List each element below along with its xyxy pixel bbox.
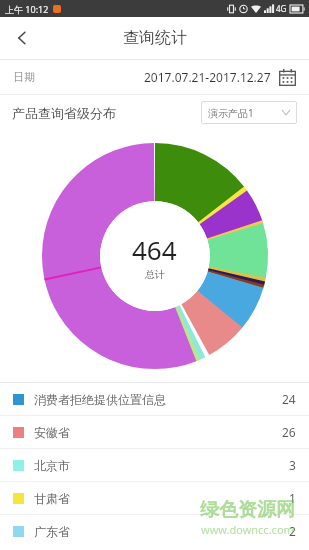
staticText: 3 xyxy=(289,457,296,473)
staticText: 4G xyxy=(276,3,287,14)
staticText: 26 xyxy=(282,424,296,440)
button[interactable]: 甘肃省 xyxy=(0,482,309,514)
staticText: 北京市 xyxy=(34,458,70,473)
button[interactable]: 演示产品1 xyxy=(201,101,297,124)
staticText: 总计 xyxy=(145,268,165,281)
staticText: 绿色资源网 xyxy=(200,498,295,522)
button[interactable]: 日期 xyxy=(0,60,309,94)
button[interactable]: 广东省 xyxy=(0,515,309,547)
staticText: 上午 10:12 xyxy=(5,3,49,15)
button[interactable]: Back xyxy=(0,17,44,59)
button[interactable]: 消费者拒绝提供位置信息 xyxy=(0,383,309,415)
staticText: 消费者拒绝提供位置信息 xyxy=(34,392,166,407)
button[interactable]: 北京市 xyxy=(0,449,309,481)
staticText: 24 xyxy=(282,391,296,407)
staticText: 产品查询省级分布 xyxy=(12,105,116,121)
staticText: 464 xyxy=(132,232,177,267)
staticText: 演示产品1 xyxy=(208,106,254,120)
staticText: 甘肃省 xyxy=(34,491,70,506)
staticText: 日期 xyxy=(13,70,35,84)
staticText: 查询统计 xyxy=(123,28,187,48)
button[interactable]: 安徽省 xyxy=(0,416,309,448)
staticText: www.downcc.com xyxy=(201,522,294,537)
staticText: 2017.07.21-2017.12.27 xyxy=(144,69,271,85)
staticText: 广东省 xyxy=(34,524,70,539)
staticText: 2 xyxy=(289,523,296,539)
staticText: 1 xyxy=(289,490,296,506)
staticText: 安徽省 xyxy=(34,425,70,440)
